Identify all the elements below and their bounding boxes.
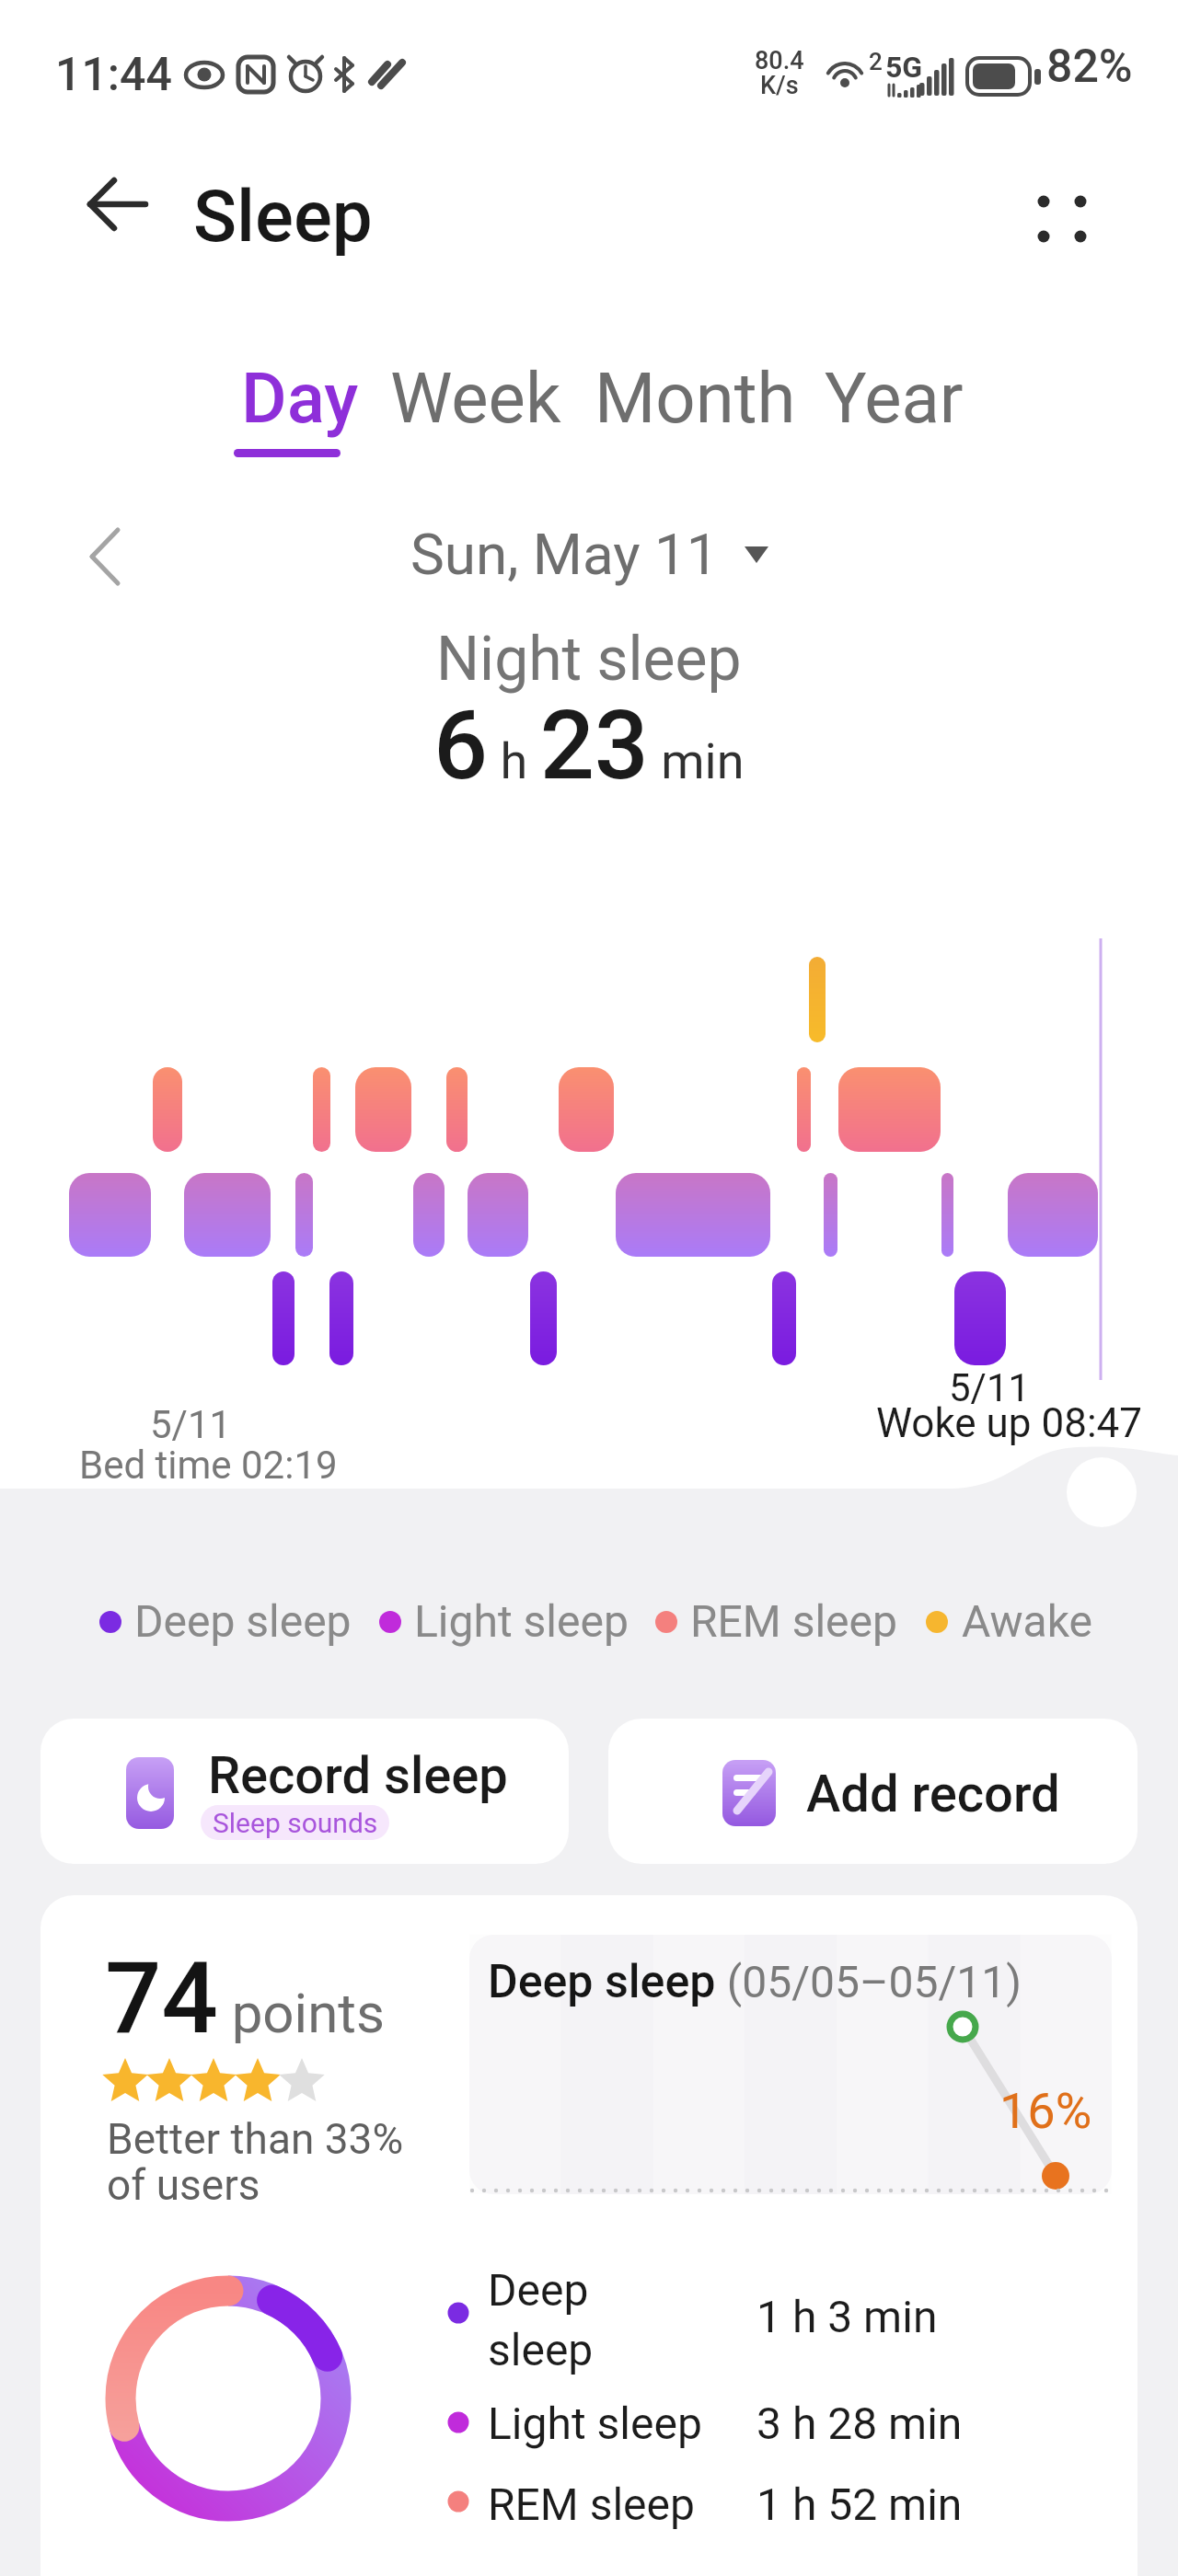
staticText: 2 [869,48,883,75]
staticText: Sun, May 11 [410,521,719,588]
button[interactable] [40,1719,569,1864]
button[interactable] [608,1719,1138,1864]
staticText: 74 points [105,1940,385,2057]
button[interactable] [814,340,957,460]
staticText: Month [595,357,796,439]
staticText: Sleep [193,175,373,259]
staticText: 82% [1046,40,1133,94]
staticText: 5G [885,50,923,85]
staticText: Awake [962,1595,1093,1647]
staticText: 5/11 [150,1402,232,1447]
button[interactable] [1067,1457,1137,1527]
staticText: 11:44 [55,48,172,102]
staticText: Year [825,357,964,439]
staticText: Deep sleep [488,2264,594,2376]
staticText: 1 h 3 min [756,2291,938,2342]
staticText: Sleep sounds [213,1807,378,1839]
staticText: 80.4 [755,46,804,75]
staticText: Record sleep [208,1745,508,1806]
staticText: 5/11 [949,1365,1031,1410]
staticText: Light sleep [414,1595,629,1647]
staticText: 1 h 52 min [756,2478,963,2530]
staticText: Woke up 08:47 [876,1399,1143,1447]
staticText: REM sleep [488,2478,695,2530]
button[interactable] [55,515,138,598]
staticText: Bed time 02:19 [79,1443,338,1488]
staticText: REM sleep [690,1595,897,1647]
button[interactable] [584,340,787,460]
button[interactable] [74,175,156,239]
button[interactable] [40,1895,1138,2576]
staticText: Week [390,357,561,439]
staticText: Deep sleep (05/05–05/11) [488,1955,1022,2009]
staticText: Add record [806,1764,1060,1824]
staticText: Light sleep [488,2398,702,2449]
staticText: 16% [999,2082,1092,2140]
button[interactable] [221,340,350,460]
button[interactable] [405,515,773,598]
staticText: 3 h 28 min [756,2398,963,2449]
staticText: Day [241,357,359,439]
staticText: Deep sleep [134,1595,352,1647]
staticText: 6 h 23 min [433,690,745,802]
staticText: Night sleep [436,624,742,695]
staticText: K/s [760,71,799,100]
staticText: Better than 33% of users [107,2114,404,2210]
button[interactable] [1022,175,1104,258]
button[interactable] [377,340,561,460]
